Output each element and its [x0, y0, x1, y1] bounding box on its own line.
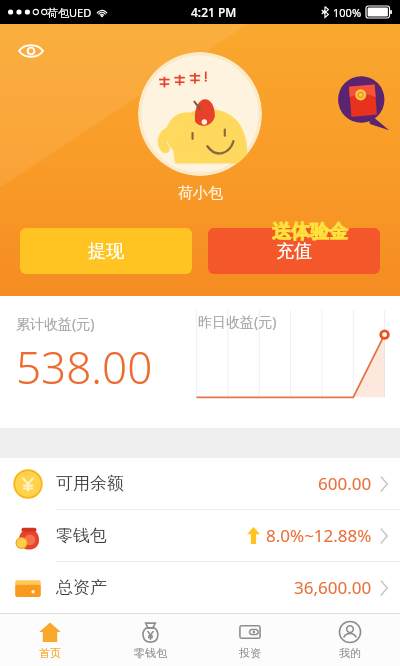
staticText: 首页	[39, 646, 61, 660]
staticText: 我的	[339, 646, 361, 660]
staticText: 100%	[333, 5, 362, 20]
button[interactable]: 首页	[0, 614, 100, 666]
button[interactable]: Red packet message	[334, 74, 392, 132]
button[interactable]: 可用余额	[0, 458, 400, 509]
button[interactable]: 零钱包	[100, 614, 200, 666]
button[interactable]: 我的	[300, 614, 400, 666]
staticText: 提现	[88, 240, 124, 263]
staticText: 充值	[276, 240, 312, 263]
staticText: 昨日收益(元)	[198, 312, 277, 331]
button[interactable]: 充值	[208, 228, 380, 274]
staticText: 4:21 PM	[191, 4, 237, 20]
staticText: 总资产	[56, 577, 107, 598]
staticText: 送体验金	[272, 220, 348, 244]
button[interactable]: Mascot	[138, 52, 262, 176]
button[interactable]: Toggle visibility	[14, 34, 48, 68]
staticText: 荷小包	[178, 184, 223, 203]
staticText: 投资	[239, 646, 261, 660]
staticText: 零钱包	[134, 646, 167, 660]
staticText: 600.00	[318, 472, 372, 495]
button[interactable]: 提现	[20, 228, 192, 274]
staticText: 8.0%~12.88%	[266, 524, 372, 547]
button[interactable]: 总资产	[0, 562, 400, 613]
button[interactable]: 零钱包	[0, 510, 400, 561]
staticText: 累计收益(元)	[16, 314, 95, 333]
staticText: 36,600.00	[294, 576, 372, 599]
staticText: 荷包UED	[47, 5, 92, 20]
staticText: 538.00	[16, 337, 153, 397]
staticText: 可用余额	[56, 473, 124, 494]
staticText: 零钱包	[56, 525, 107, 546]
button[interactable]: 投资	[200, 614, 300, 666]
